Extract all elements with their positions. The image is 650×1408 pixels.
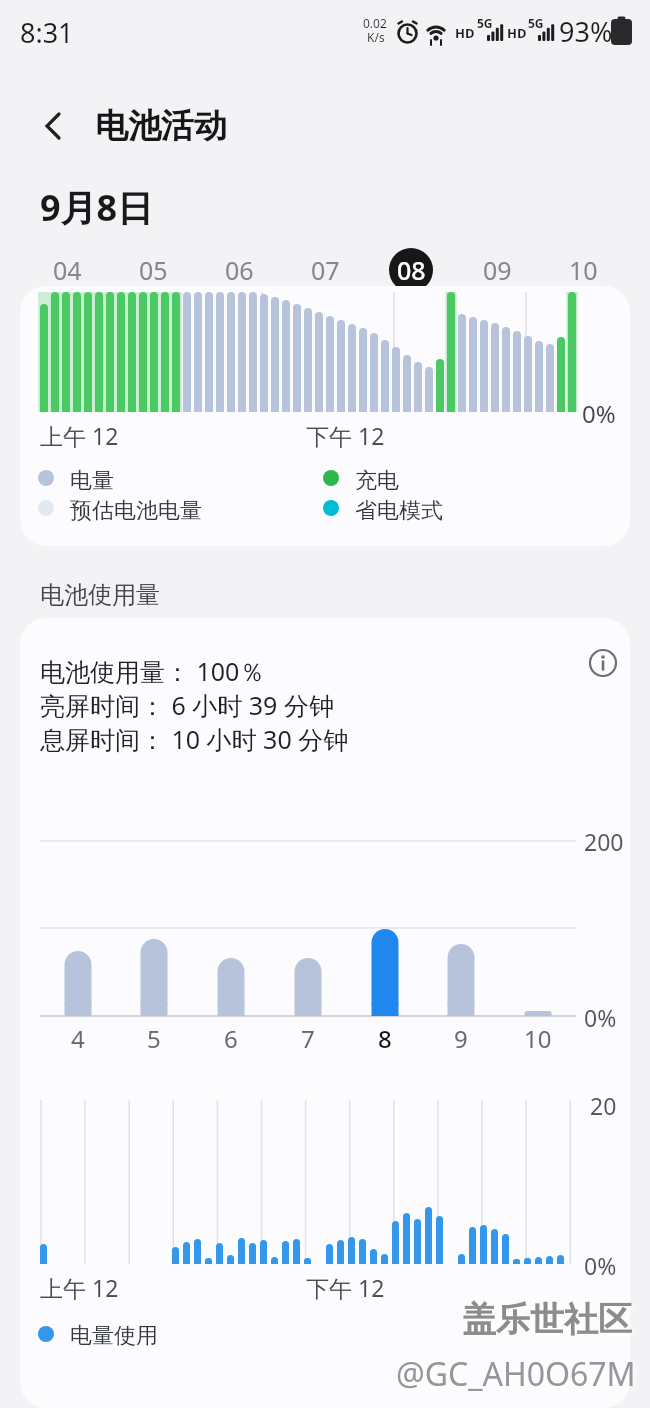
staticText: 预估电池电量 [70, 497, 202, 525]
staticText: 200 [584, 826, 624, 857]
staticText: K/s [367, 29, 385, 45]
button[interactable]: 07 [303, 248, 347, 292]
staticText: 电池活动 [95, 105, 227, 147]
staticText: 省电模式 [355, 497, 443, 525]
staticText: 7 [301, 1022, 315, 1052]
button[interactable]: 05 [131, 248, 175, 292]
staticText: 93% [559, 13, 613, 50]
staticText: 上午 12 [40, 1272, 119, 1303]
button[interactable]: 08 [389, 248, 433, 292]
staticText: 4 [71, 1022, 85, 1052]
staticText: 5 [147, 1022, 161, 1052]
staticText: 8:31 [20, 14, 74, 51]
staticText: 5G [477, 15, 493, 31]
button[interactable]: 10 [561, 248, 605, 292]
staticText: 06 [225, 253, 254, 287]
staticText: 10 [524, 1022, 552, 1052]
staticText: 5G [528, 15, 544, 31]
staticText: 20 [590, 1090, 617, 1121]
staticText: 电池使用量 [40, 580, 160, 610]
staticText: 下午 12 [306, 1272, 385, 1303]
staticText: 0.02 [363, 15, 387, 31]
staticText: 充电 [355, 467, 399, 495]
staticText: 上午 12 [40, 420, 119, 451]
staticText: 07 [311, 253, 340, 287]
staticText: 0% [582, 397, 616, 430]
staticText: 6 [224, 1022, 238, 1052]
staticText: 电池使用量： 100％ [40, 654, 265, 688]
staticText: 电量 [70, 467, 114, 495]
staticText: 盖乐世社区 [462, 1298, 632, 1341]
staticText: 0% [584, 1002, 617, 1033]
button[interactable] [28, 100, 80, 152]
button[interactable]: 06 [217, 248, 261, 292]
button[interactable]: 09 [475, 248, 519, 292]
staticText: 8 [378, 1022, 392, 1052]
staticText: 05 [139, 253, 168, 287]
staticText: 04 [53, 253, 82, 287]
staticText: 08 [397, 253, 426, 287]
staticText: 09 [483, 253, 512, 287]
staticText: 10 [569, 253, 598, 287]
staticText: 0% [584, 1250, 617, 1281]
staticText: 电量使用 [70, 1322, 158, 1350]
staticText: 9 [454, 1022, 468, 1052]
staticText: 息屏时间： 10 小时 30 分钟 [40, 722, 349, 756]
staticText: HD [507, 24, 527, 42]
staticText: @GC_AH0O67M [396, 1352, 636, 1396]
button[interactable]: 04 [45, 248, 89, 292]
staticText: 亮屏时间： 6 小时 39 分钟 [40, 688, 334, 722]
button[interactable] [579, 639, 627, 687]
staticText: 下午 12 [306, 420, 385, 451]
staticText: HD [455, 24, 475, 42]
staticText: 9月8日 [40, 183, 154, 232]
